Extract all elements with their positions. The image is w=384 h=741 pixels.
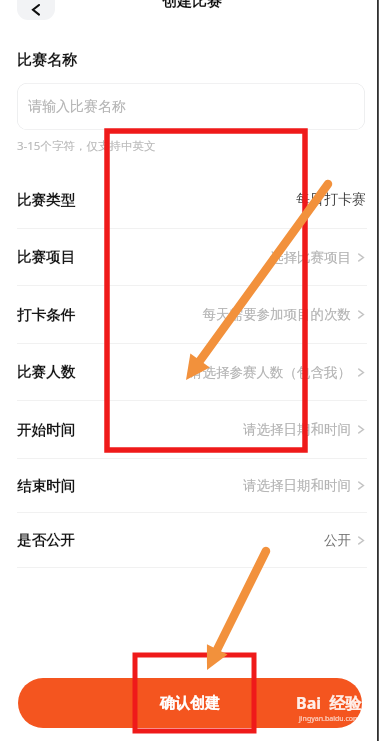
staticText: 请输入比赛名称 <box>28 98 126 116</box>
button[interactable]: 是否公开 <box>0 513 384 567</box>
button[interactable]: 比赛类型 <box>0 172 384 228</box>
staticText: 请选择日期和时间 <box>243 477 351 494</box>
staticText: 确认创建 <box>160 694 220 713</box>
staticText: 选择比赛项目 <box>270 249 351 266</box>
staticText: 开始时间 <box>17 421 75 439</box>
staticText: 比赛类型 <box>17 191 75 209</box>
button[interactable]: 比赛人数 <box>0 344 384 400</box>
staticText: Bai 经验 <box>296 692 362 714</box>
button[interactable]: 确认创建 <box>18 678 362 728</box>
staticText: 请选择参赛人数（包含我） <box>189 364 351 381</box>
staticText: 创建比赛 <box>162 0 222 11</box>
staticText: 比赛项目 <box>17 248 75 266</box>
staticText: 每天需要参加项目的次数 <box>202 306 351 323</box>
button[interactable]: 比赛项目 <box>0 229 384 285</box>
staticText: 请选择日期和时间 <box>243 421 351 438</box>
button[interactable]: 打卡条件 <box>0 286 384 343</box>
button[interactable]: 请输入比赛名称 <box>17 83 365 130</box>
button[interactable]: 结束时间 <box>0 459 384 512</box>
staticText: 公开 <box>324 532 351 549</box>
button[interactable]: 开始时间 <box>0 401 384 458</box>
staticText: 3-15个字符，仅支持中英文 <box>17 138 156 154</box>
staticText: jingyan.baidu.com <box>299 714 360 724</box>
staticText: 是否公开 <box>17 531 75 549</box>
staticText: 结束时间 <box>17 477 75 495</box>
staticText: 比赛人数 <box>17 363 75 381</box>
staticText: 比赛名称 <box>17 51 77 70</box>
button[interactable]: Back <box>17 0 55 20</box>
staticText: 每日打卡赛 <box>296 191 366 209</box>
staticText: 打卡条件 <box>17 306 75 324</box>
